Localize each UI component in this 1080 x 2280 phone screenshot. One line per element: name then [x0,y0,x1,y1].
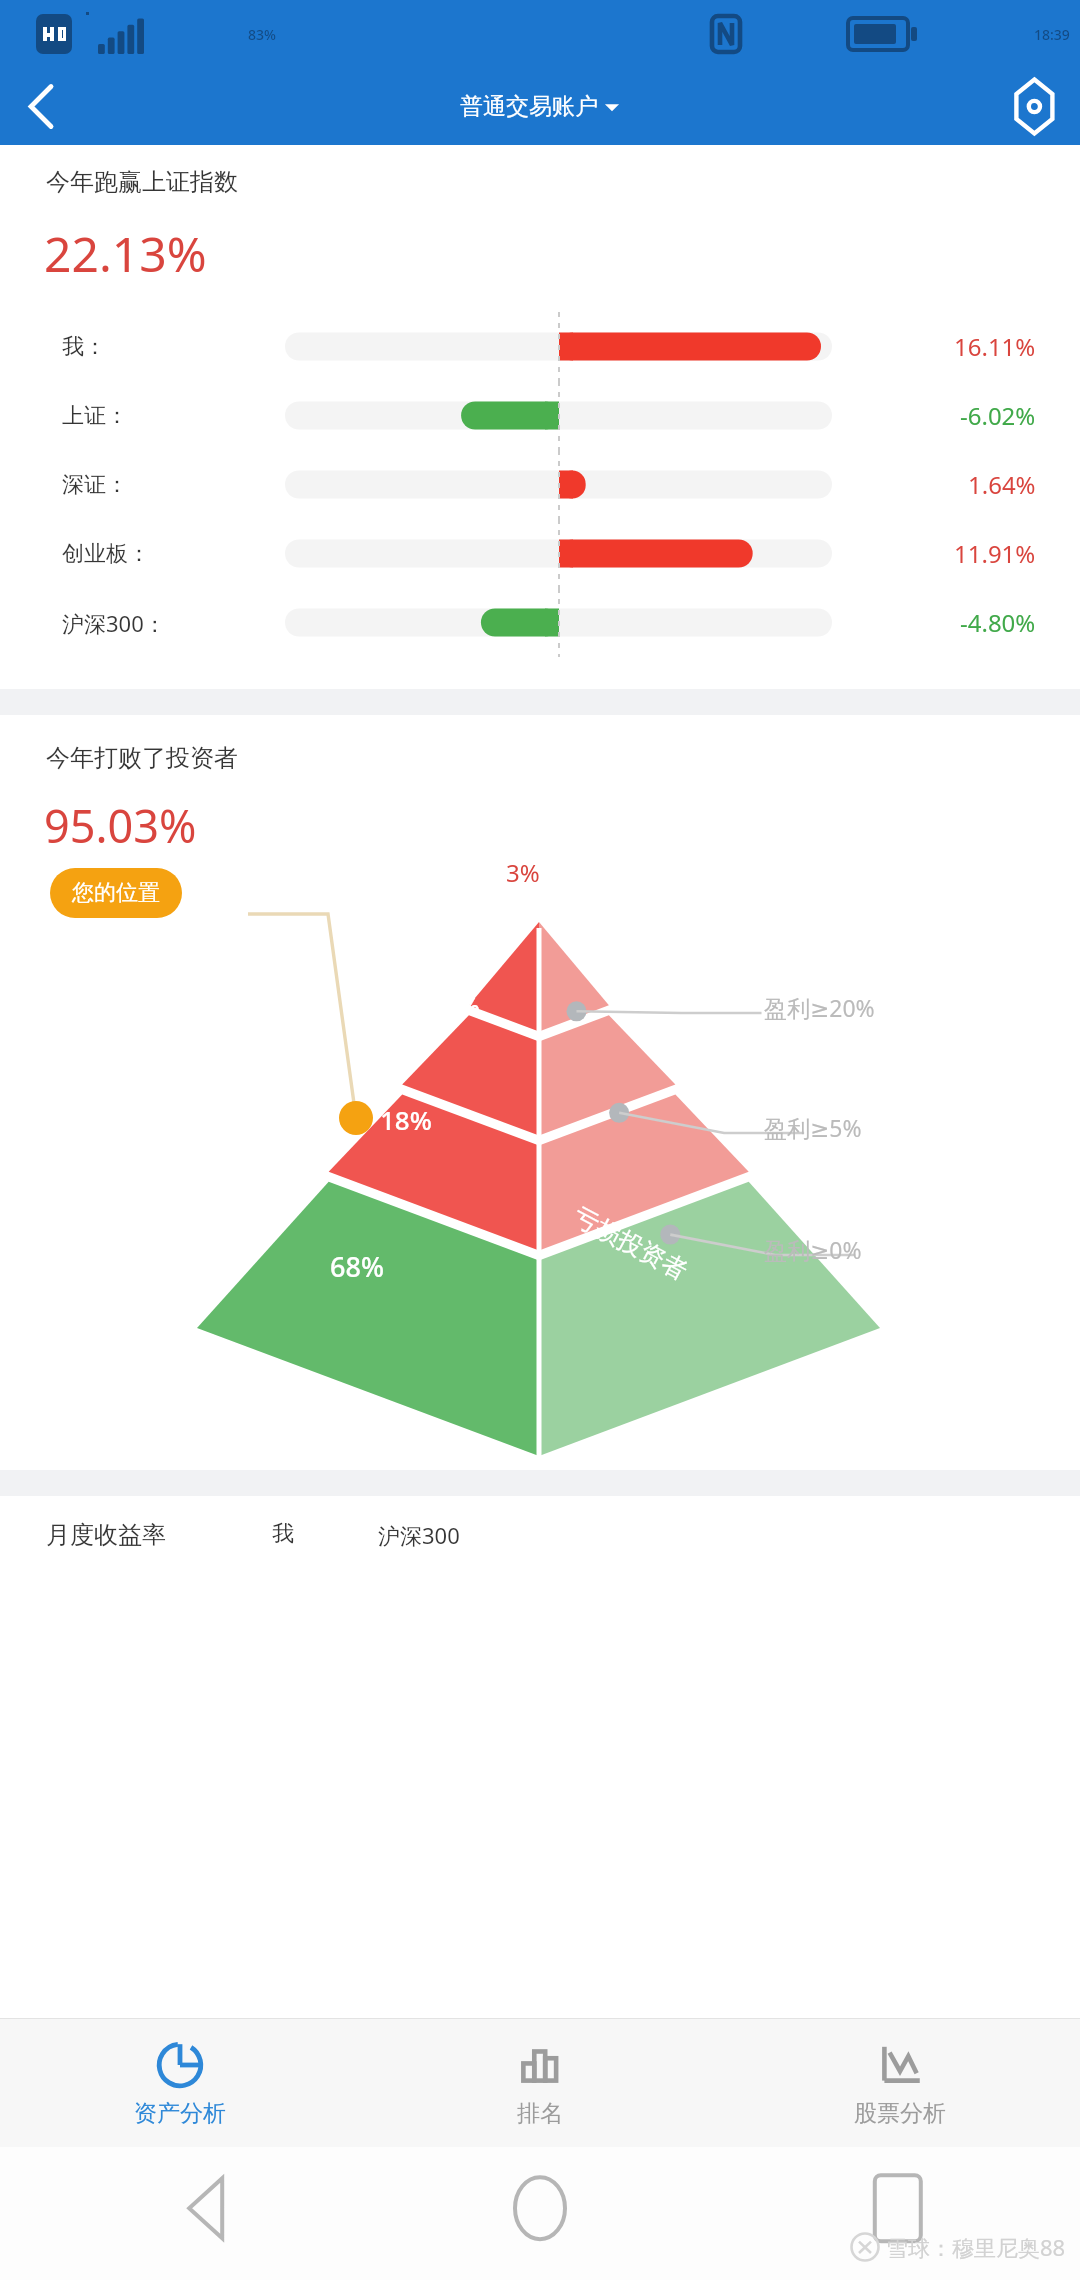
button[interactable]: Back [0,68,76,145]
staticText: 盈利≥20% [764,992,875,1023]
button[interactable]: Settings [1000,68,1080,145]
staticText: 22.13% [44,221,207,286]
staticText: 我 [272,1520,294,1548]
staticText: 盈利≥5% [764,1112,862,1143]
button[interactable]: 资产分析 [0,2019,360,2147]
staticText: 股票分析 [854,2099,946,2128]
staticText: 68% [330,1248,384,1285]
button[interactable]: 排名 [360,2019,720,2147]
staticText: 沪深300： [62,608,166,638]
staticText: 月度收益率 [46,1520,166,1550]
button[interactable]: 股票分析 [720,2019,1080,2147]
staticText: 盈利≥0% [764,1234,862,1265]
staticText: -4.80% [960,606,1036,639]
staticText: 16.11% [954,330,1036,363]
staticText: 我： [62,333,106,361]
staticText: 排名 [517,2099,563,2128]
staticText: 今年打败了投资者 [46,743,238,773]
staticText: 95.03% [44,795,197,856]
button[interactable]: Recents [720,2147,1080,2280]
staticText: 11.91% [954,537,1036,570]
staticText: -6.02% [960,399,1036,432]
staticText: 亏损投资者 [568,1200,693,1287]
staticText: 雪球：穆里尼奥88 [886,2232,1066,2262]
staticText: 上证： [62,402,128,430]
staticText: 普通交易账户 [460,92,598,121]
staticText: 1.64% [968,468,1036,501]
button[interactable]: 您的位置 [50,868,182,918]
staticText: 18:39 [1034,25,1070,44]
staticText: 18% [380,1102,432,1137]
button[interactable]: 普通交易账户 [460,92,620,121]
staticText: 83% [248,25,276,44]
button[interactable]: Home [360,2147,720,2280]
staticText: 3% [506,856,540,889]
staticText: 深证： [62,471,128,499]
staticText: 11% [428,988,480,1023]
staticText: 创业板： [62,540,150,568]
staticText: 今年跑赢上证指数 [46,167,238,197]
staticText: 资产分析 [134,2099,226,2128]
staticText: 您的位置 [72,879,160,907]
staticText: 沪深300 [378,1520,460,1550]
button[interactable]: Back [0,2147,360,2280]
